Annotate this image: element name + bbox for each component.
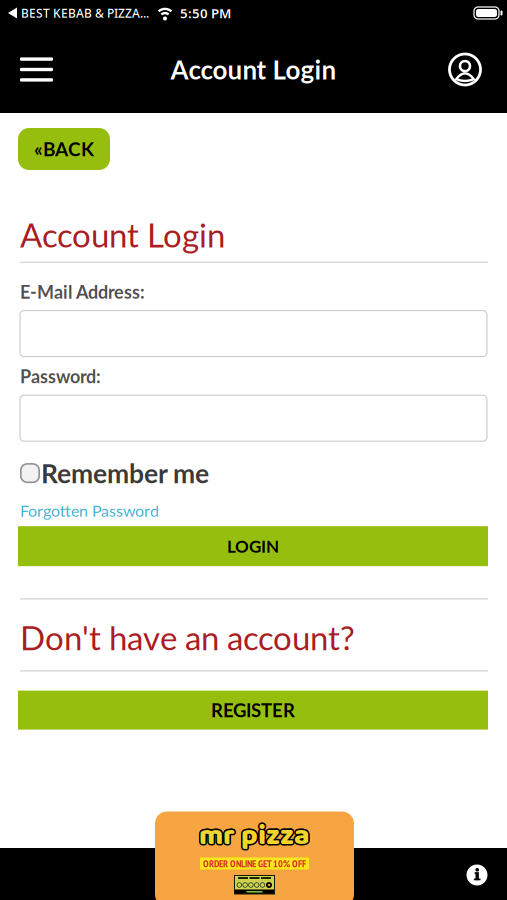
staticText: Forgotten Password bbox=[20, 501, 159, 520]
button[interactable]: Forgotten Password bbox=[20, 501, 159, 520]
staticText: mr pizza bbox=[200, 814, 311, 860]
staticText: Account Login bbox=[20, 215, 225, 255]
button[interactable]: Information bbox=[466, 864, 487, 885]
staticText: mr pizza bbox=[198, 814, 309, 860]
button[interactable]: REGISTER bbox=[18, 691, 488, 730]
staticText: REGISTER bbox=[211, 699, 295, 721]
staticText: mr pizza bbox=[200, 812, 311, 858]
staticText: Password: bbox=[20, 366, 101, 387]
button[interactable]: Account bbox=[449, 53, 481, 85]
button[interactable]: LOGIN bbox=[18, 526, 488, 566]
staticText: BEST KEBAB & PIZZA... bbox=[21, 5, 149, 21]
staticText: «BACK bbox=[34, 138, 94, 160]
staticText: mr pizza bbox=[200, 813, 311, 859]
staticText: ORDER ONLINE GET 10% OFF bbox=[203, 857, 306, 870]
staticText: Account Login bbox=[170, 54, 336, 85]
staticText: mr pizza bbox=[199, 811, 310, 857]
staticText: mr pizza bbox=[198, 812, 309, 858]
staticText: Don't have an account? bbox=[20, 618, 355, 657]
button[interactable]: Remember me bbox=[20, 457, 209, 489]
button[interactable]: Back to Best Kebab & Pizza bbox=[8, 5, 149, 21]
staticText: Remember me bbox=[41, 457, 209, 489]
button[interactable]: Menu bbox=[20, 57, 53, 82]
staticText: E-Mail Address: bbox=[20, 281, 145, 303]
button[interactable]: «BACK bbox=[18, 128, 110, 170]
staticText: mr pizza bbox=[197, 813, 308, 859]
staticText: mr pizza bbox=[199, 813, 310, 859]
staticText: 5:50 PM bbox=[180, 4, 231, 22]
button[interactable]: Mr Pizza — order online, get 10% off bbox=[155, 818, 354, 900]
staticText: mr pizza bbox=[199, 814, 310, 860]
staticText: LOGIN bbox=[227, 536, 279, 556]
